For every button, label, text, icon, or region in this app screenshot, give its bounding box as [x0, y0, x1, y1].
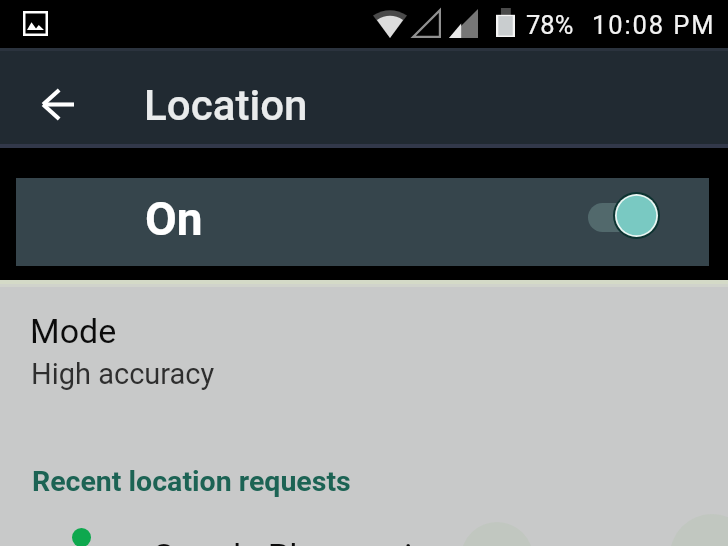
staticText: High accuracy — [31, 357, 215, 391]
staticText: Mode — [30, 311, 117, 351]
staticText: Location — [144, 81, 308, 130]
button[interactable]: Mode — [0, 301, 728, 399]
staticText: On — [145, 192, 203, 246]
button[interactable]: Google Play services — [0, 506, 728, 546]
staticText: 78% — [526, 10, 574, 40]
button[interactable]: Navigate up — [32, 83, 82, 125]
other: Screenshot — [23, 11, 48, 36]
staticText: Google Play services — [152, 536, 466, 546]
staticText: Recent location requests — [32, 465, 351, 498]
button[interactable]: On — [16, 178, 709, 266]
staticText: 10:08 PM — [592, 10, 716, 40]
